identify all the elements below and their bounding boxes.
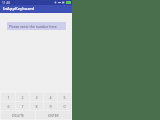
staticText: 2 xyxy=(21,95,24,100)
button[interactable]: 7 xyxy=(16,102,29,110)
staticText: 1 xyxy=(7,95,10,100)
button[interactable]: 2 xyxy=(16,93,29,101)
button[interactable]: 0 xyxy=(58,102,71,110)
button[interactable]: 5 xyxy=(58,93,71,101)
button[interactable]: DELETE xyxy=(1,111,35,119)
staticText: DELETE xyxy=(12,113,24,118)
staticText: 3 xyxy=(35,95,38,100)
button[interactable]: 9 xyxy=(44,102,57,110)
button[interactable]: 6 xyxy=(1,102,15,110)
staticText: 5 xyxy=(63,95,66,100)
button[interactable]: ENTER xyxy=(36,111,71,119)
staticText: ENTER xyxy=(48,113,59,118)
button[interactable]: Please enter the number here xyxy=(7,22,66,30)
staticText: Please enter the number here xyxy=(9,24,57,29)
staticText: 6 xyxy=(7,104,10,109)
staticText: 9 xyxy=(49,104,52,109)
staticText: 8 xyxy=(35,104,38,109)
staticText: InAppKeyboard xyxy=(3,6,35,12)
staticText: 0 xyxy=(63,104,66,109)
button[interactable]: 3 xyxy=(30,93,43,101)
staticText: 4 xyxy=(49,95,52,100)
button[interactable]: 1 xyxy=(1,93,15,101)
button[interactable]: 4 xyxy=(44,93,57,101)
staticText: 11:46 xyxy=(2,1,11,5)
button[interactable]: 8 xyxy=(30,102,43,110)
staticText: 7 xyxy=(21,104,24,109)
